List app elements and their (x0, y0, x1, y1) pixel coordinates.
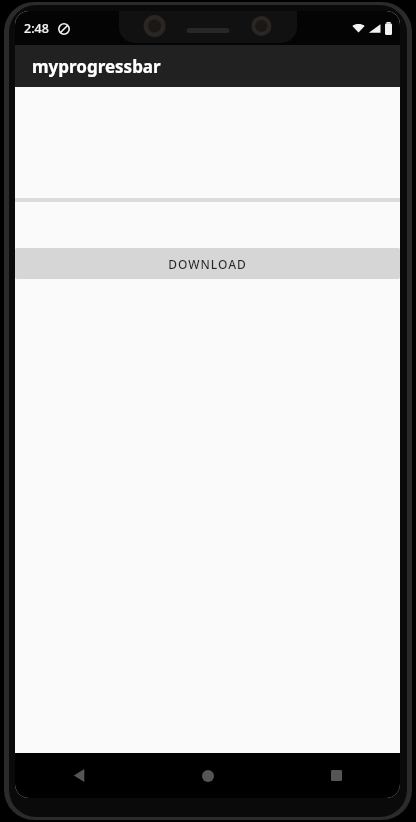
staticText: DOWNLOAD (168, 256, 247, 272)
button[interactable]: Recent apps (272, 753, 400, 798)
staticText: 2:48 (24, 20, 49, 37)
button[interactable]: Home (144, 753, 272, 798)
button[interactable]: Back (15, 753, 144, 798)
button[interactable]: DOWNLOAD (15, 248, 400, 279)
staticText: myprogressbar (32, 55, 161, 78)
